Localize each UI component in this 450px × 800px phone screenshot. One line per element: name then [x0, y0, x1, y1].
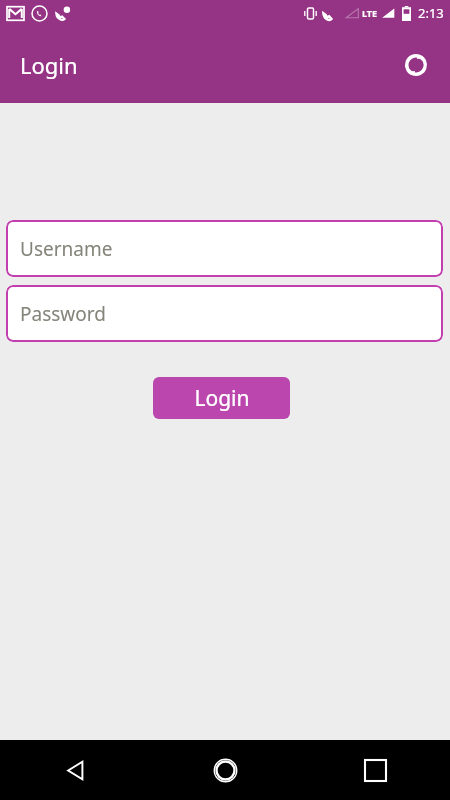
button[interactable]: Home — [150, 740, 300, 800]
staticText: Password — [20, 301, 106, 327]
button[interactable]: Username — [6, 220, 443, 277]
staticText: Username — [20, 236, 113, 262]
staticText: Login — [20, 50, 78, 80]
staticText: Login — [194, 384, 250, 413]
staticText: LTE — [362, 7, 378, 19]
button[interactable]: Password — [6, 285, 443, 342]
button[interactable]: Login — [153, 377, 290, 419]
button[interactable]: Back — [0, 740, 150, 800]
staticText: 2:13 — [418, 4, 444, 22]
button[interactable]: Refresh — [394, 43, 438, 87]
button[interactable]: Recents — [300, 740, 450, 800]
